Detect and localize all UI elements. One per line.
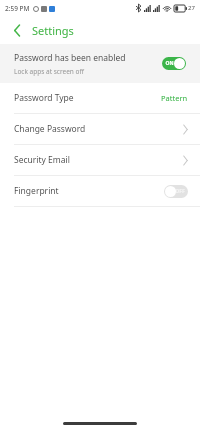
- button[interactable]: Toggle off: [164, 185, 188, 198]
- button[interactable]: Password Type: [0, 83, 200, 113]
- staticText: Fingerprint: [14, 185, 164, 197]
- staticText: Settings: [32, 23, 74, 38]
- button[interactable]: Password has been enabled: [0, 44, 200, 83]
- staticText: 27: [188, 4, 195, 12]
- staticText: Password Type: [14, 92, 161, 104]
- staticText: 2:59 PM: [5, 4, 30, 13]
- button[interactable]: Toggle on: [162, 57, 186, 70]
- staticText: Password has been enabled: [14, 52, 126, 64]
- staticText: OFF: [175, 188, 185, 195]
- button[interactable]: Change Password: [0, 114, 200, 144]
- staticText: Pattern: [161, 93, 188, 103]
- staticText: Security Email: [14, 154, 183, 166]
- button[interactable]: Fingerprint: [0, 176, 200, 206]
- staticText: Change Password: [14, 123, 183, 135]
- button[interactable]: Security Email: [0, 145, 200, 175]
- button[interactable]: Back: [6, 19, 28, 41]
- staticText: Lock apps at screen off: [14, 67, 84, 76]
- staticText: ON: [165, 60, 174, 67]
